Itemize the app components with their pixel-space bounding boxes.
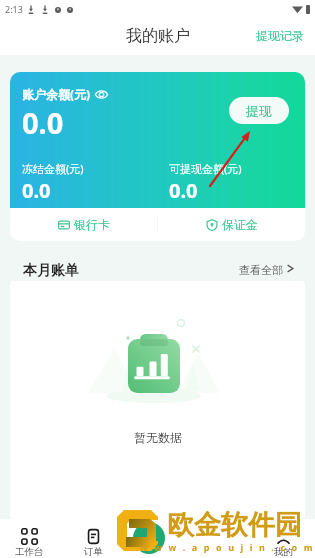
button[interactable]: 显示余额 [95,89,108,100]
button[interactable]: 银行卡 [10,208,157,241]
staticText: 我的账户 [126,26,190,46]
staticText: 可提现金额(元) [169,161,242,176]
staticText: 欧金软件园 [168,510,303,544]
staticText: 欧金软件园 [165,509,300,543]
staticText: 欧金软件园 [165,508,300,542]
staticText: 0.0 [22,177,51,204]
staticText: 查看全部 [239,263,283,277]
staticText: 提现记录 [256,28,304,43]
staticText: 欧金软件园 [168,508,303,542]
staticText: 欧金软件园 [167,510,302,544]
staticText: 提现 [246,103,272,119]
button[interactable]: 提现记录 [248,24,315,47]
staticText: 订单 [84,546,103,558]
staticText: 欧金软件园 [166,508,301,542]
staticText: 保证金 [222,217,258,232]
staticText: 欧金软件园 [168,507,303,541]
staticText: 欧金软件园 [167,508,302,542]
staticText: 欧金软件园 [168,509,303,543]
staticText: 欧金软件园 [166,507,301,541]
button[interactable]: 提现 [229,97,289,124]
staticText: 我的 [274,546,293,558]
staticText: 本月账单 [23,262,79,280]
staticText: 欧金软件园 [167,507,302,541]
staticText: 欧金软件园 [166,508,301,542]
staticText: 欧金软件园 [166,510,301,544]
staticText: 欧金软件园 [165,507,300,541]
staticText: 欧金软件园 [167,507,302,541]
button[interactable]: 我的 [258,519,308,558]
staticText: 0.0 [22,103,64,142]
staticText: 欧金软件园 [168,507,303,541]
staticText: 欧金软件园 [166,506,301,540]
staticText: 2:13 [5,3,23,15]
button[interactable]: 工作台 [4,519,54,558]
button[interactable]: 订单 [68,519,118,558]
staticText: 欧金软件园 [169,508,304,542]
staticText: w w w . a p o u j i n . c o m [140,541,315,553]
button[interactable]: 保证金 [158,208,305,241]
staticText: 工作台 [15,546,44,558]
staticText: 欧金软件园 [167,506,302,540]
staticText: 冻结金额(元) [22,161,84,176]
staticText: 欧金软件园 [169,507,304,541]
staticText: 欧金软件园 [169,509,304,543]
staticText: 欧金软件园 [168,509,303,543]
staticText: 欧金软件园 [166,507,301,541]
staticText: 账户余额(元) [22,86,91,102]
button[interactable]: 查看全部 [231,260,294,277]
staticText: 暂无数据 [134,430,182,445]
staticText: 欧金软件园 [168,506,303,540]
staticText: 欧金软件园 [168,508,303,542]
staticText: 欧金软件园 [166,509,301,543]
staticText: 银行卡 [74,217,110,232]
staticText: 欧金软件园 [167,509,302,543]
staticText: 0.0 [169,177,198,204]
staticText: 欧金软件园 [166,509,301,543]
staticText: 欧金软件园 [167,509,302,543]
